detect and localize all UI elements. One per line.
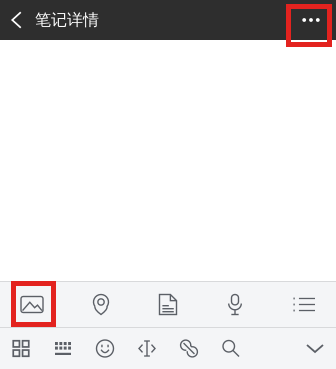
- button[interactable]: Insert link: [168, 327, 210, 369]
- button[interactable]: Text style: [126, 327, 168, 369]
- button[interactable]: Voice input: [213, 282, 257, 326]
- button[interactable]: Back: [0, 0, 33, 40]
- button[interactable]: Search: [210, 327, 252, 369]
- button[interactable]: Insert file: [146, 282, 190, 326]
- button[interactable]: Emoji: [84, 327, 126, 369]
- button[interactable]: Insert location: [79, 282, 123, 326]
- button[interactable]: Hide toolbar: [294, 327, 336, 369]
- button[interactable]: More options: [288, 0, 334, 40]
- button[interactable]: Bulleted list: [282, 282, 326, 326]
- button[interactable]: Insert photo: [10, 282, 54, 326]
- button[interactable]: Keyboard: [42, 327, 84, 369]
- staticText: 笔记详情: [35, 10, 99, 30]
- button[interactable]: Templates: [0, 327, 42, 369]
